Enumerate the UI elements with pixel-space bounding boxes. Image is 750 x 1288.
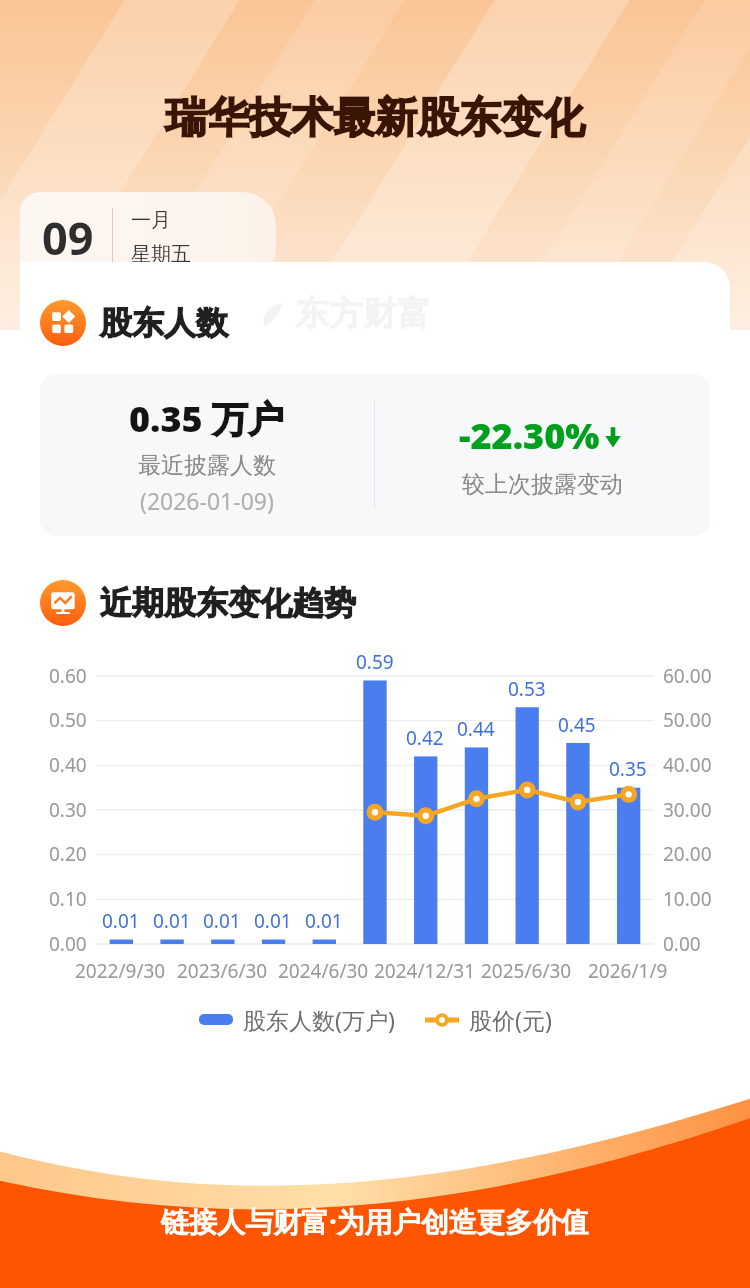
staticText: (2026-01-09) bbox=[140, 485, 274, 516]
staticText: 一月 bbox=[131, 208, 171, 233]
staticText: 瑞华技术最新股东变化 bbox=[165, 92, 585, 145]
staticText: 0.35 bbox=[609, 756, 647, 782]
staticText: 0.01 bbox=[254, 908, 292, 934]
staticText: 2022/9/30 bbox=[75, 958, 166, 984]
staticText: -22.30% bbox=[459, 411, 600, 460]
staticText: 2026/1/9 bbox=[588, 958, 668, 984]
other: 股东人数 bbox=[40, 300, 86, 346]
staticText: 0.45 bbox=[558, 712, 596, 738]
staticText: 股价(元) bbox=[469, 1004, 552, 1035]
staticText: 0.40 bbox=[49, 752, 87, 778]
staticText: 股东人数(万户) bbox=[243, 1004, 395, 1035]
staticText: 0.30 bbox=[49, 797, 87, 823]
staticText: 0.20 bbox=[49, 841, 87, 867]
staticText: 40.00 bbox=[663, 752, 712, 778]
staticText: 0.59 bbox=[356, 649, 394, 675]
staticText: 0.50 bbox=[49, 707, 87, 733]
staticText: 50.00 bbox=[663, 707, 712, 733]
button[interactable]: 09 bbox=[20, 192, 276, 282]
staticText: 链接人与财富·为用户创造更多价值 bbox=[161, 1202, 589, 1240]
staticText: 0.44 bbox=[457, 716, 495, 742]
staticText: 2025/6/30 bbox=[481, 958, 572, 984]
staticText: 0.10 bbox=[49, 886, 87, 912]
staticText: 20.00 bbox=[663, 841, 712, 867]
staticText: 0.00 bbox=[49, 931, 87, 957]
staticText: 60.00 bbox=[663, 663, 712, 689]
staticText: 近期股东变化趋势 bbox=[100, 583, 356, 623]
button[interactable]: 0.35 万户 bbox=[40, 374, 710, 536]
staticText: 30.00 bbox=[663, 797, 712, 823]
staticText: 0.00 bbox=[663, 931, 701, 957]
staticText: 2024/6/30 bbox=[278, 958, 369, 984]
staticText: 0.42 bbox=[406, 725, 444, 751]
staticText: 较上次披露变动 bbox=[462, 470, 623, 499]
staticText: 10.00 bbox=[663, 886, 712, 912]
staticText: 2023/6/30 bbox=[177, 958, 268, 984]
staticText: 最近披露人数 bbox=[138, 451, 276, 480]
staticText: 2024/12/31 bbox=[374, 958, 476, 984]
button[interactable]: 股东人数 bbox=[40, 300, 228, 346]
staticText: 09 bbox=[42, 207, 94, 268]
staticText: 0.60 bbox=[49, 663, 87, 689]
staticText: 0.53 bbox=[508, 676, 546, 702]
staticText: 0.01 bbox=[305, 908, 343, 934]
staticText: 星期五 bbox=[131, 242, 191, 267]
staticText: 0.01 bbox=[153, 908, 191, 934]
staticText: 股东人数 bbox=[100, 303, 228, 343]
staticText: 0.01 bbox=[102, 908, 140, 934]
other: 近期股东变化趋势 bbox=[40, 580, 86, 626]
staticText: 0.35 万户 bbox=[129, 394, 285, 443]
button[interactable]: 近期股东变化趋势 bbox=[40, 580, 356, 626]
staticText: 0.01 bbox=[203, 908, 241, 934]
staticText: 东方财富 bbox=[295, 292, 431, 335]
